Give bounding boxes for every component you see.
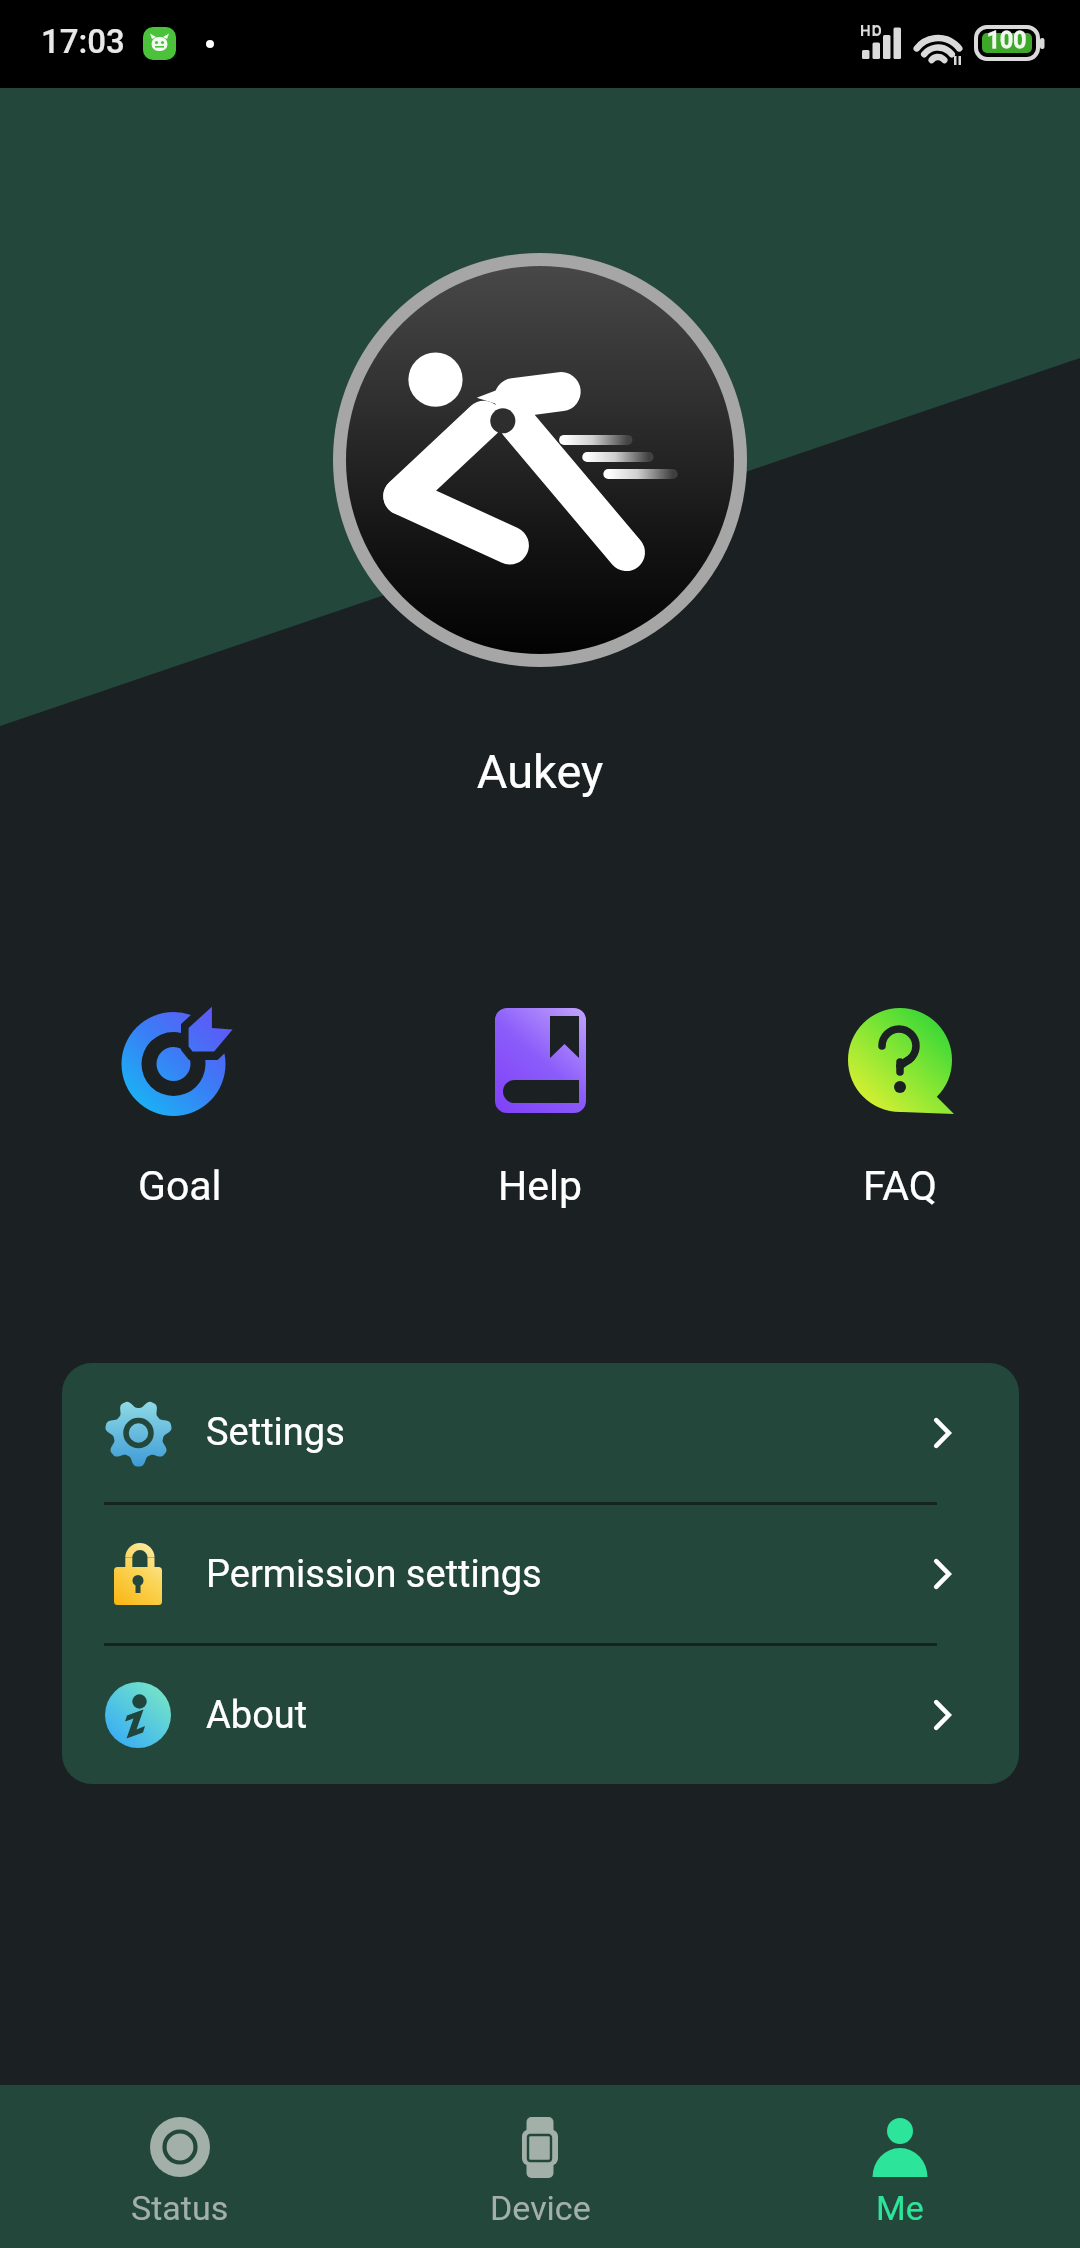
staticText: Settings	[206, 1410, 345, 1455]
staticText: Device	[490, 2188, 591, 2228]
staticText: Permission settings	[206, 1552, 542, 1597]
button[interactable]: Device	[360, 2085, 720, 2248]
button[interactable]: Settings	[62, 1363, 1019, 1502]
staticText: FAQ	[863, 1162, 937, 1210]
button[interactable]: Help	[360, 1004, 720, 1210]
button[interactable]: Permission settings	[62, 1505, 1019, 1643]
staticText: 17:03	[41, 22, 125, 61]
button[interactable]: Status	[0, 2085, 360, 2248]
button[interactable]: Me	[720, 2085, 1080, 2248]
button[interactable]: Goal	[0, 1004, 360, 1210]
staticText: About	[206, 1693, 308, 1738]
other: Status	[150, 2117, 210, 2177]
staticText: Goal	[138, 1162, 222, 1210]
button[interactable]: FAQ	[720, 1004, 1080, 1210]
button[interactable]: About	[62, 1646, 1019, 1784]
other: Me	[872, 2118, 928, 2177]
staticText: Me	[876, 2188, 924, 2228]
other: Device	[522, 2117, 558, 2178]
staticText: Status	[131, 2188, 229, 2228]
staticText: Help	[498, 1162, 582, 1210]
staticText: 100	[987, 27, 1027, 54]
staticText: Aukey	[0, 744, 1080, 799]
